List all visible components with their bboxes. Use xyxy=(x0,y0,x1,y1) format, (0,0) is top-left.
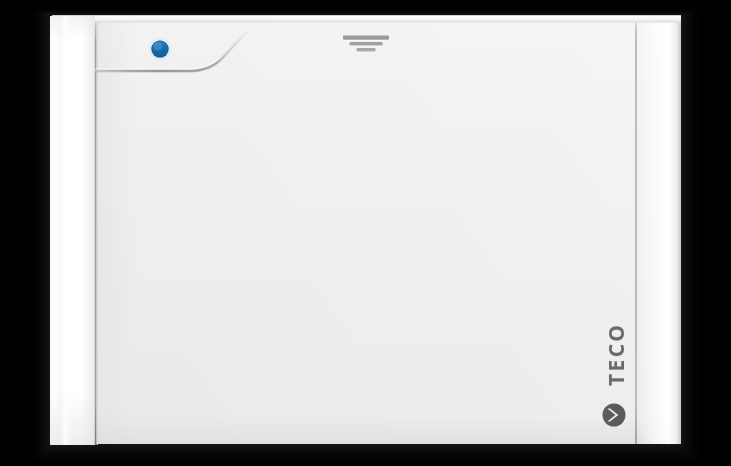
button[interactable]: TECO heat pump unit front view xyxy=(0,0,731,466)
